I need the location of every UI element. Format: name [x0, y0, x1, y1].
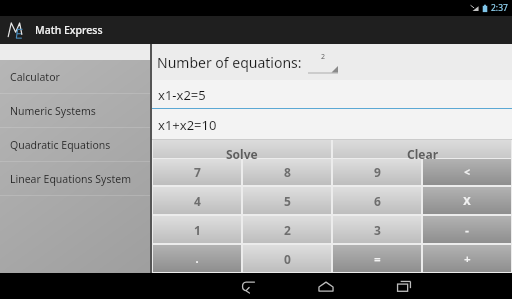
button[interactable]: Clear — [333, 140, 511, 158]
button[interactable]: 9 — [333, 159, 421, 185]
staticText: 3 — [374, 222, 381, 238]
button[interactable]: x1+x2=10 — [152, 109, 512, 140]
button[interactable]: Number of equations — [308, 50, 338, 74]
button[interactable]: 8 — [243, 159, 331, 185]
button[interactable]: Numeric Systems — [0, 94, 150, 127]
staticText: x1+x2=10 — [158, 116, 217, 134]
button[interactable]: 7 — [153, 159, 241, 185]
button[interactable]: Home — [303, 273, 349, 299]
button[interactable]: Quadratic Equations — [0, 128, 150, 161]
button[interactable]: Recent apps — [381, 273, 427, 299]
button[interactable]: . — [153, 245, 241, 272]
staticText: Linear Equations System — [10, 172, 132, 186]
staticText: 5 — [284, 193, 291, 209]
staticText: 2:37 — [491, 2, 508, 14]
button[interactable]: Calculator — [0, 60, 150, 93]
staticText: + — [464, 251, 471, 266]
button[interactable]: < — [423, 159, 511, 185]
staticText: Solve — [226, 146, 258, 162]
staticText: 2 — [284, 222, 291, 238]
button[interactable]: x1-x2=5 — [152, 80, 512, 109]
staticText: Numeric Systems — [10, 104, 96, 118]
staticText: 7 — [194, 164, 201, 180]
other: Math Express logo — [6, 19, 28, 41]
staticText: Quadratic Equations — [10, 138, 111, 152]
staticText: X — [463, 193, 471, 208]
staticText: 2 — [321, 52, 326, 62]
button[interactable]: 3 — [333, 216, 421, 243]
staticText: x1-x2=5 — [158, 86, 206, 104]
button[interactable]: 2 — [243, 216, 331, 243]
button[interactable]: 6 — [333, 187, 421, 214]
staticText: < — [464, 165, 470, 179]
button[interactable]: 1 — [153, 216, 241, 243]
button[interactable]: - — [423, 216, 511, 243]
button[interactable]: X — [423, 187, 511, 214]
staticText: . — [195, 251, 199, 266]
staticText: 9 — [374, 164, 381, 180]
button[interactable]: = — [333, 245, 421, 272]
staticText: 1 — [194, 222, 201, 238]
staticText: 0 — [284, 251, 291, 267]
button[interactable]: 5 — [243, 187, 331, 214]
staticText: Calculator — [10, 70, 60, 84]
staticText: - — [465, 222, 469, 237]
staticText: = — [374, 251, 381, 266]
button[interactable]: Solve — [153, 140, 331, 158]
staticText: 4 — [194, 193, 201, 209]
staticText: Math Express — [35, 23, 103, 37]
staticText: Clear — [407, 146, 438, 162]
button[interactable]: 0 — [243, 245, 331, 272]
button[interactable]: 4 — [153, 187, 241, 214]
staticText: 8 — [284, 164, 291, 180]
button[interactable]: Linear Equations System — [0, 162, 150, 195]
button[interactable]: + — [423, 245, 511, 272]
staticText: 6 — [374, 193, 381, 209]
button[interactable]: Back — [225, 273, 271, 299]
staticText: Number of equations: — [157, 53, 302, 72]
